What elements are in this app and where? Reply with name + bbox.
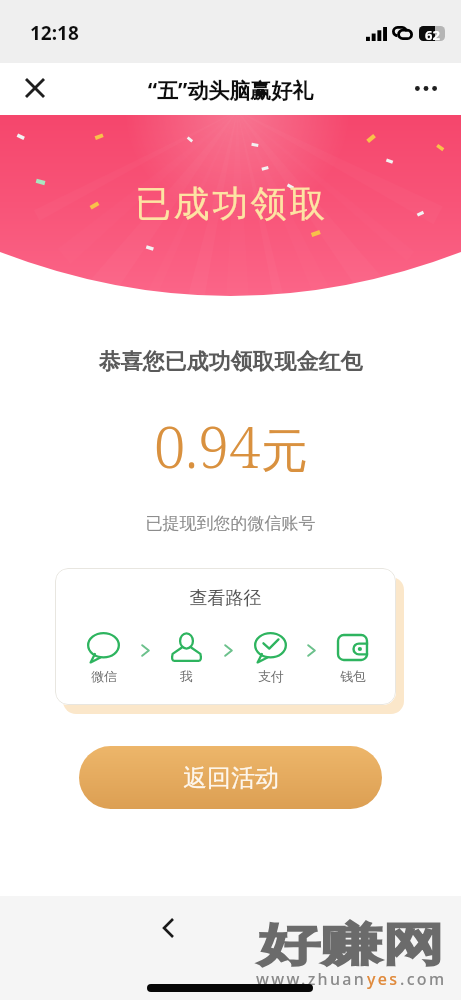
staticText: .com (400, 968, 447, 990)
button[interactable]: 返回活动 (79, 746, 382, 809)
button[interactable]: More options (405, 67, 447, 109)
staticText: “五”动头脑赢好礼 (0, 76, 461, 105)
staticText: yes (367, 968, 400, 990)
staticText: 微信 (91, 668, 117, 684)
staticText: 查看路径 (55, 587, 396, 610)
staticText: 好赚网 (258, 917, 444, 974)
staticText: 返回活动 (183, 763, 279, 793)
button[interactable]: 查看路径 (55, 568, 396, 705)
staticText: 我 (180, 668, 193, 684)
button[interactable]: Back (147, 907, 189, 949)
button[interactable]: Close (14, 67, 56, 109)
staticText: 钱包 (340, 668, 366, 684)
staticText: 0.94 (154, 408, 261, 484)
staticText: 已成功领取 (1, 181, 461, 226)
staticText: 支付 (258, 668, 284, 684)
staticText: 12:18 (30, 20, 79, 46)
staticText: 元 (261, 422, 308, 481)
staticText: 已提现到您的微信账号 (0, 513, 461, 534)
staticText: 62 (425, 26, 440, 41)
staticText: 恭喜您已成功领取现金红包 (0, 348, 461, 376)
staticText: www.zhuan (256, 968, 367, 990)
